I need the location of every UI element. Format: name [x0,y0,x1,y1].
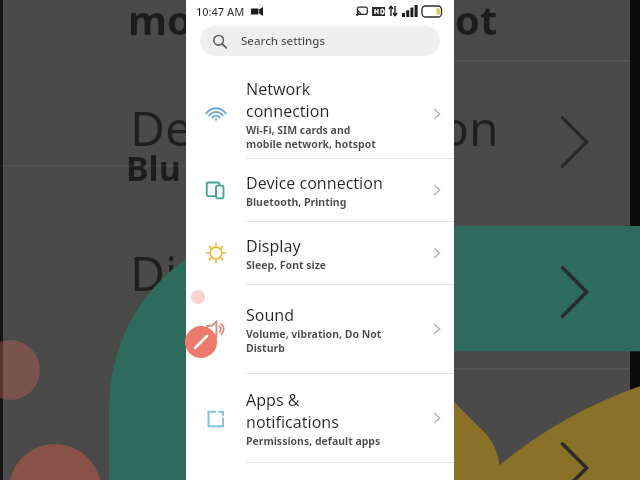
staticText: Sound [246,304,295,326]
staticText: on [440,95,499,160]
staticText: Volume, vibration, Do Not [246,327,382,341]
staticText: Search settings [241,33,326,49]
staticText: Sle [140,290,190,336]
staticText: 10:47 AM [196,4,245,19]
staticText: Dis [130,240,201,305]
staticText: Bluetooth, Printing [246,195,347,209]
staticText: Disturb [246,341,285,355]
button[interactable]: Device connection [186,159,454,221]
staticText: notifications [246,411,339,433]
button[interactable]: Display [186,222,454,284]
button[interactable]: Apps & [186,374,454,462]
staticText: Display [246,235,301,257]
staticText: mo [128,0,192,46]
staticText: De [130,95,193,160]
staticText: Vol [140,452,193,480]
staticText: Wi-Fi, SIM cards and [246,123,351,137]
staticText: Blu [126,145,181,191]
staticText: ot [455,0,498,46]
staticText: mobile network, hotspot [246,137,376,151]
staticText: Permissions, default apps [246,434,381,448]
staticText: connection [246,100,330,122]
button[interactable]: Search settings [200,26,440,56]
staticText: Sc [138,400,188,465]
staticText: lot [455,452,502,480]
staticText: Apps & [246,389,300,411]
staticText: Network [246,78,311,100]
button[interactable]: Network [186,70,454,158]
staticText: Sleep, Font size [246,258,327,272]
button[interactable]: Sound [186,285,454,373]
staticText: Device connection [246,172,383,194]
